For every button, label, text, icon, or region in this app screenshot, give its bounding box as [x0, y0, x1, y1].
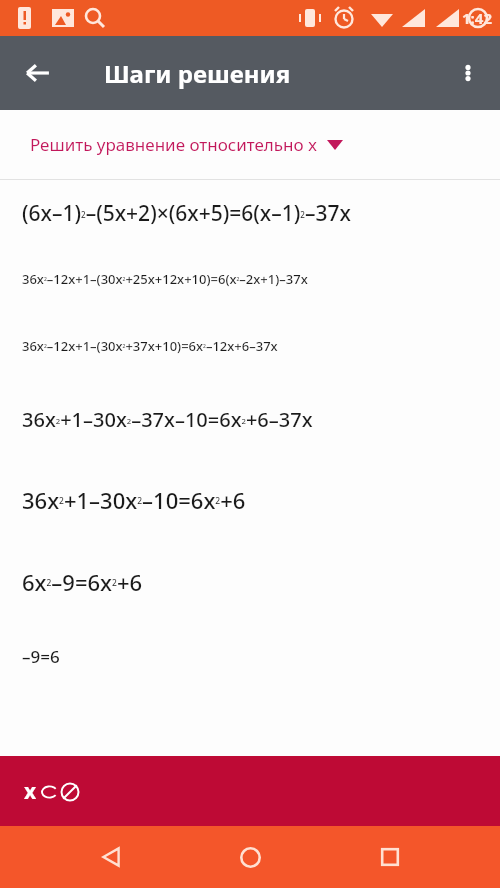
staticText: –9=6	[22, 645, 60, 668]
staticText: 36x2–12x+1–(30x2+37x+10)=6x2–12x+6–37x	[22, 337, 278, 355]
staticText: (6x–1)2–(5x+2)×(6x+5)=6(x–1)2–37x	[22, 199, 351, 228]
button[interactable]: More options	[444, 49, 492, 97]
staticText: 36x2+1–30x2–10=6x2+6	[22, 485, 246, 515]
button[interactable]: Home	[221, 828, 279, 886]
staticText: Решить уравнение относительно x	[30, 133, 318, 156]
staticText: 36x2–12x+1–(30x2+25x+12x+10)=6(x2–2x+1)–…	[22, 270, 308, 288]
staticText: x	[24, 777, 37, 806]
button[interactable]: Back	[14, 49, 62, 97]
button[interactable]: x	[0, 756, 500, 826]
button[interactable]: Recent apps	[361, 828, 419, 886]
staticText: 36x2+1–30x2–37x–10=6x2+6–37x	[22, 406, 313, 433]
button[interactable]: Back	[82, 828, 140, 886]
staticText: 1:42	[462, 8, 492, 28]
staticText: 6x2–9=6x2+6	[22, 567, 143, 597]
staticText: Шаги решения	[104, 57, 291, 90]
button[interactable]: Решить уравнение относительно x	[0, 110, 500, 179]
